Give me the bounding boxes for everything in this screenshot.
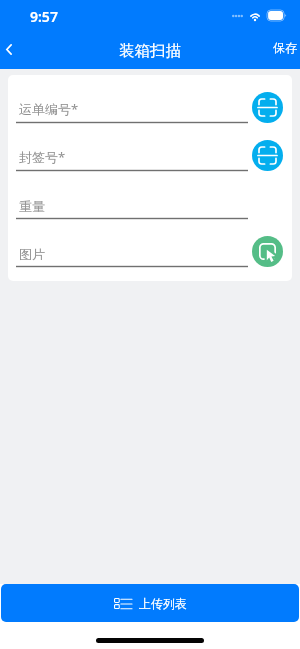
staticText: 9:57 bbox=[30, 7, 58, 26]
staticText: 封签号* bbox=[19, 148, 66, 166]
staticText: 上传列表 bbox=[139, 596, 187, 611]
button[interactable]: Scan barcode bbox=[252, 92, 283, 123]
staticText: 图片 bbox=[19, 246, 45, 262]
button[interactable]: Back bbox=[0, 30, 30, 69]
button[interactable]: Scan barcode bbox=[252, 140, 283, 171]
staticText: 重量 bbox=[19, 198, 45, 214]
staticText: 保存 bbox=[273, 40, 297, 55]
button[interactable]: Select image bbox=[252, 236, 283, 267]
button[interactable]: 上传列表 bbox=[1, 584, 299, 622]
staticText: 装箱扫描 bbox=[119, 41, 181, 61]
button[interactable]: 保存 bbox=[273, 30, 297, 69]
staticText: 运单编号* bbox=[19, 100, 79, 118]
